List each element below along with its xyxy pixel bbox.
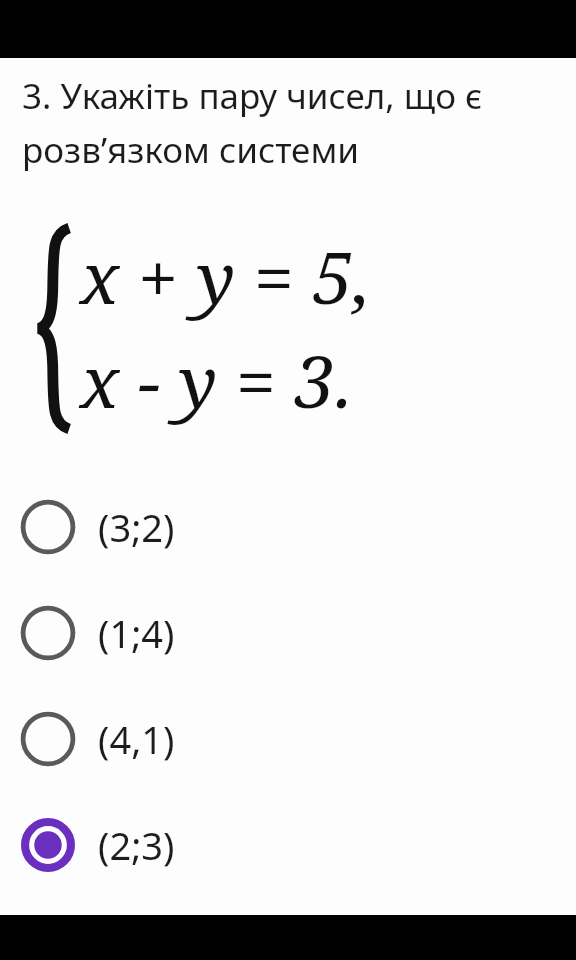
staticText: x − y = 3.: [80, 331, 354, 429]
button[interactable]: Option (4,1): [0, 686, 576, 792]
other: Option (3;2): [20, 499, 76, 555]
button[interactable]: Selected option (2;3): [0, 792, 576, 898]
other: Selected option (2;3): [20, 817, 76, 873]
button[interactable]: Option (3;2): [0, 474, 576, 580]
staticText: (3;2): [98, 501, 175, 553]
button[interactable]: Option (1;4): [0, 580, 576, 686]
staticText: (2;3): [98, 819, 175, 871]
staticText: (4,1): [98, 713, 175, 765]
other: Option (1;4): [20, 605, 76, 661]
staticText: 3. Укажіть пару чисел, що є: [22, 72, 483, 120]
staticText: x + y = 5,: [80, 227, 371, 325]
staticText: розв’язком системи: [22, 126, 360, 174]
other: Option (4,1): [20, 711, 76, 767]
staticText: (1;4): [98, 607, 175, 659]
